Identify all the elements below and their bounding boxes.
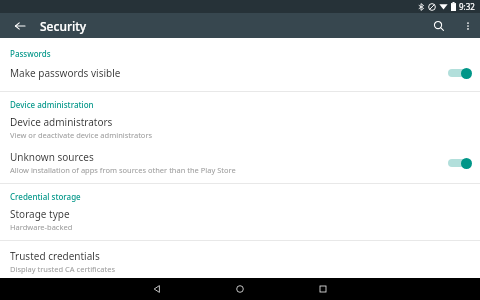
button[interactable]: Trusted credentials: [0, 247, 480, 276]
staticText: Security: [40, 18, 87, 34]
button[interactable]: Toggle: [446, 156, 472, 170]
staticText: 9:32: [459, 1, 475, 12]
staticText: Passwords: [10, 48, 51, 59]
staticText: Allow installation of apps from sources …: [10, 165, 236, 175]
staticText: Trusted credentials: [10, 249, 100, 263]
button[interactable]: Home: [223, 278, 257, 300]
staticText: Device administrators: [10, 115, 113, 129]
button[interactable]: More options: [456, 13, 480, 38]
staticText: Display trusted CA certificates: [10, 264, 115, 274]
button[interactable]: Storage type: [0, 205, 480, 234]
button[interactable]: Recent apps: [306, 278, 340, 300]
staticText: Storage type: [10, 207, 70, 221]
staticText: View or deactivate device administrators: [10, 130, 153, 140]
button[interactable]: Toggle: [446, 66, 472, 80]
staticText: Hardware-backed: [10, 222, 73, 232]
staticText: Unknown sources: [10, 150, 94, 164]
button[interactable]: Device administrators: [0, 113, 480, 142]
button[interactable]: Search: [422, 13, 456, 38]
button[interactable]: Make passwords visible: [0, 62, 480, 84]
button[interactable]: Back: [140, 278, 174, 300]
staticText: Make passwords visible: [10, 66, 446, 80]
button[interactable]: Navigate up: [0, 13, 40, 38]
staticText: Credential storage: [10, 191, 81, 202]
staticText: Device administration: [10, 99, 94, 110]
button[interactable]: Unknown sources: [0, 148, 480, 177]
